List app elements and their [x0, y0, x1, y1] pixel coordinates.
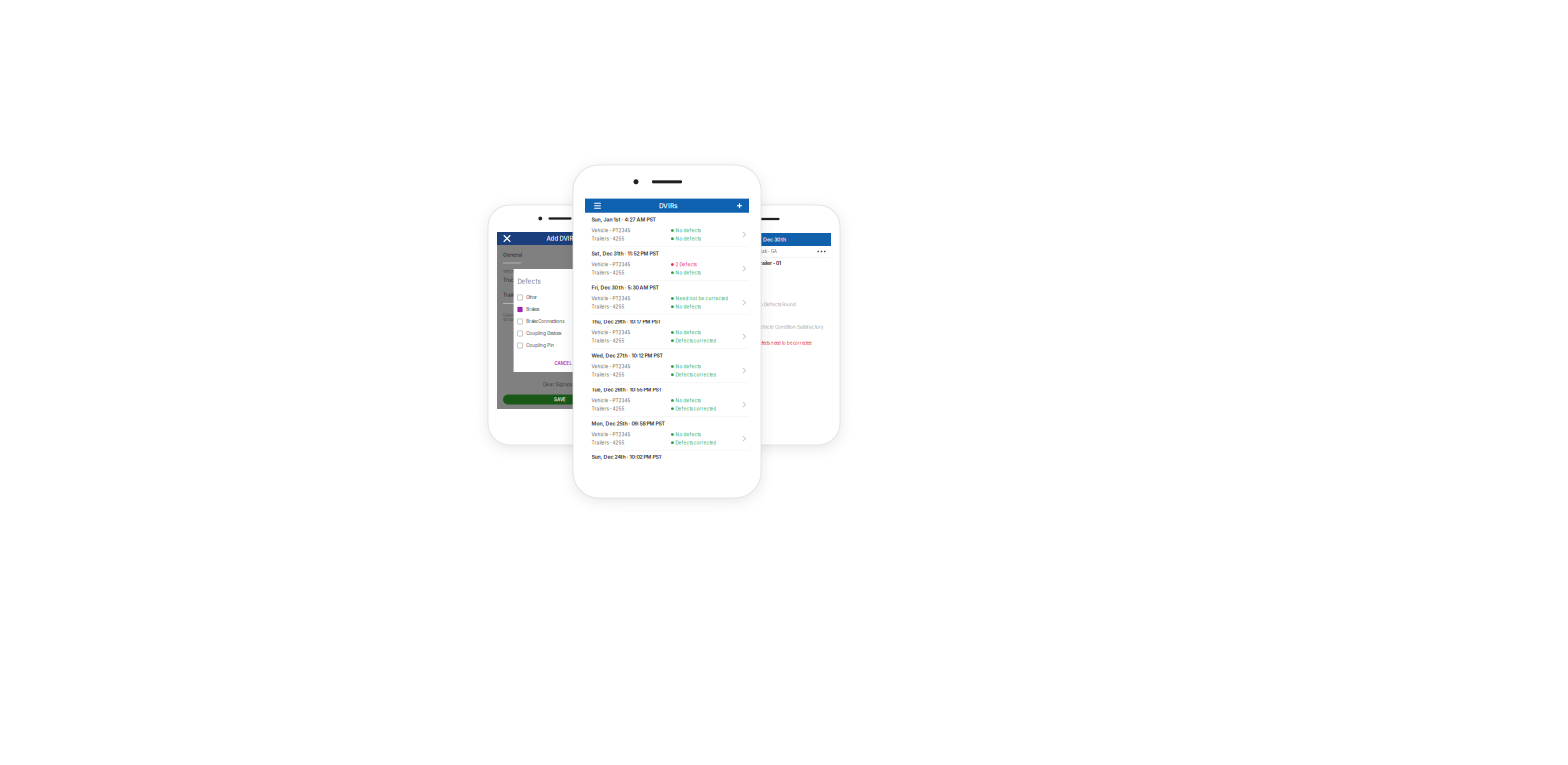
staticText: No defects: [675, 330, 700, 335]
staticText: SAVE: [554, 397, 566, 402]
staticText: Defects: [517, 278, 540, 285]
staticText: Mon, Dec 25th · 09:58 PM PST: [591, 420, 664, 427]
button[interactable]: Thu, Dec 29th · 10:17 PM PST: [585, 315, 749, 348]
staticText: Odometer: [503, 313, 519, 317]
staticText: Trailers - 4255: [591, 236, 624, 241]
button[interactable]: Tue, Dec 26th · 10:55 PM PST: [585, 383, 749, 416]
staticText: No defects: [675, 270, 700, 275]
button[interactable]: Brakes: [517, 303, 572, 315]
staticText: No defects: [675, 364, 700, 369]
staticText: Sun, Dec 24th · 10:02 PM PST: [591, 454, 661, 460]
staticText: Vehicle - PT2345: [591, 330, 630, 335]
button[interactable]: CANCEL: [555, 359, 572, 368]
staticText: Fri, Dec 30th · 5:30 AM PST: [591, 284, 658, 291]
staticText: Defects corrected: [675, 440, 716, 445]
staticText: Sun, Jan 1st · 4:27 AM PST: [591, 216, 655, 223]
staticText: Truck - GA: [757, 249, 777, 254]
staticText: No defects: [675, 432, 700, 437]
staticText: Vehicle - PT2345: [591, 262, 630, 267]
button[interactable]: SAVE: [503, 394, 617, 404]
staticText: Vehicle - PT2345: [591, 398, 630, 403]
button[interactable]: Sun, Jan 1st · 4:27 AM PST: [585, 213, 749, 246]
staticText: Add DVIR: [546, 235, 573, 242]
button[interactable]: Coupling Devices: [517, 327, 572, 339]
staticText: No defects: [675, 304, 700, 309]
staticText: Defects need to be corrected: [757, 340, 812, 346]
staticText: Truck - PT2345: [503, 277, 539, 283]
staticText: Clear Signature: [542, 382, 577, 387]
staticText: Trailers - 4255: [591, 440, 624, 445]
button[interactable]: Wed, Dec 27th · 10:12 PM PST: [585, 349, 749, 382]
button[interactable]: Sun, Dec 24th · 10:02 PM PST: [585, 451, 749, 463]
staticText: Need not be corrected: [675, 296, 728, 301]
staticText: Defects corrected: [675, 406, 716, 411]
staticText: CANCEL: [555, 361, 572, 366]
staticText: Vehicle - PT2345: [591, 228, 630, 233]
staticText: Coupling Devices: [526, 331, 561, 336]
staticText: No Defects Found: [757, 302, 796, 307]
staticText: Vehicle: [503, 269, 515, 274]
button[interactable]: More options: [816, 247, 827, 256]
staticText: Trailers - 4255: [591, 406, 624, 411]
button[interactable]: Add DVIR: [732, 199, 746, 213]
staticText: 123 456 mi: [503, 318, 520, 322]
staticText: Trailers - 4255: [591, 338, 624, 343]
staticText: Vehicle Condition Satisfactory: [757, 324, 824, 330]
button[interactable]: Other: [517, 291, 572, 303]
staticText: Sat, Dec 31th · 11:52 PM PST: [591, 250, 658, 257]
button[interactable]: Close: [500, 232, 514, 245]
staticText: Trailers - 4255: [591, 270, 624, 275]
button[interactable]: Clear Signature: [539, 380, 580, 389]
staticText: Trailer - 01: [757, 260, 781, 266]
staticText: Coupling Pin: [526, 343, 554, 348]
button[interactable]: Fri, Dec 30th · 5:30 AM PST: [585, 281, 749, 314]
staticText: Trailers - 4255: [591, 372, 624, 377]
staticText: Thu, Dec 29th · 10:17 PM PST: [591, 318, 660, 325]
button[interactable]: Coupling Pin: [517, 339, 572, 351]
staticText: Trailers: [503, 292, 521, 298]
staticText: 2 Defects: [675, 262, 696, 267]
staticText: Brake Connections: [526, 319, 564, 324]
staticText: Wed, Dec 27th · 10:12 PM PST: [591, 352, 662, 359]
staticText: Brakes: [526, 307, 539, 312]
button[interactable]: Mon, Dec 25th · 09:58 PM PST: [585, 417, 749, 450]
button[interactable]: Sat, Dec 31th · 11:52 PM PST: [585, 247, 749, 280]
button[interactable]: Menu: [590, 199, 604, 213]
staticText: Defects corrected: [675, 372, 716, 377]
staticText: Active: [606, 269, 617, 274]
staticText: No defects: [675, 236, 700, 241]
staticText: Vehicle - PT2345: [591, 364, 630, 369]
staticText: Defects corrected: [675, 338, 716, 343]
button[interactable]: Brake Connections: [517, 315, 572, 327]
staticText: Other: [526, 295, 537, 300]
staticText: No defects: [675, 228, 700, 233]
staticText: Thu, Dec 30th: [750, 236, 786, 243]
staticText: Tue, Dec 26th · 10:55 PM PST: [591, 386, 661, 393]
staticText: Vehicle - PT2345: [591, 432, 630, 437]
staticText: DVIRs: [659, 202, 678, 210]
staticText: Vehicle - PT2345: [591, 296, 630, 301]
staticText: No defects: [675, 398, 700, 403]
staticText: Trailers - 4255: [591, 304, 624, 309]
staticText: General: [503, 252, 522, 258]
